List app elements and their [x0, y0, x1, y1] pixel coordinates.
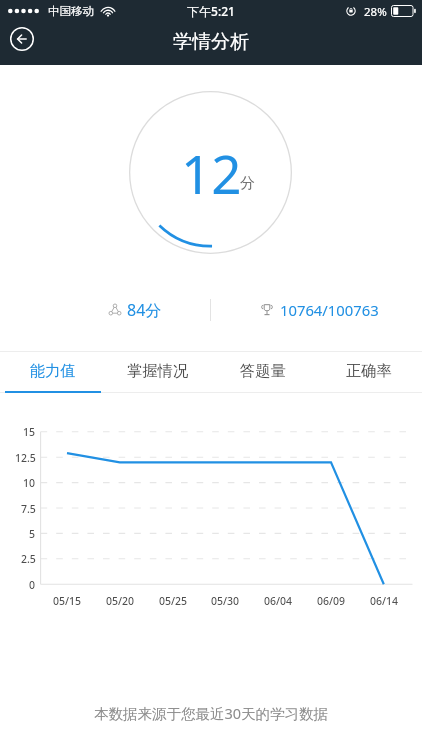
- staticText: 下午5:21: [0, 3, 422, 19]
- staticText: 10: [23, 476, 36, 490]
- staticText: 答题量: [240, 361, 286, 380]
- staticText: 06/14: [370, 594, 399, 608]
- staticText: 能力值: [30, 361, 76, 380]
- button[interactable]: Back: [8, 25, 36, 53]
- staticText: 05/20: [106, 594, 135, 608]
- staticText: 7.5: [21, 502, 36, 516]
- staticText: 06/09: [317, 594, 346, 608]
- staticText: 12: [181, 137, 242, 209]
- button[interactable]: 10764/100763: [244, 290, 394, 330]
- button[interactable]: 84分: [60, 290, 210, 330]
- staticText: 28%: [364, 4, 387, 20]
- staticText: 12.5: [15, 451, 36, 465]
- staticText: 2.5: [21, 552, 36, 566]
- staticText: 06/04: [264, 594, 293, 608]
- staticText: 分: [240, 174, 255, 193]
- button[interactable]: 能力值: [0, 351, 105, 393]
- staticText: 10764/100763: [280, 300, 379, 320]
- staticText: 15: [23, 425, 36, 439]
- staticText: 05/30: [211, 594, 240, 608]
- button[interactable]: 正确率: [316, 351, 422, 393]
- staticText: 正确率: [346, 361, 392, 380]
- staticText: 中国移动: [48, 4, 94, 18]
- button[interactable]: 掌握情况: [105, 351, 210, 393]
- staticText: 本数据来源于您最近30天的学习数据: [0, 703, 422, 723]
- staticText: 5: [29, 527, 36, 541]
- staticText: 05/25: [159, 594, 188, 608]
- staticText: 0: [29, 578, 36, 592]
- button[interactable]: 答题量: [210, 351, 316, 393]
- staticText: 05/15: [53, 594, 82, 608]
- staticText: 84分: [127, 299, 162, 321]
- staticText: 学情分析: [0, 30, 422, 54]
- staticText: 掌握情况: [127, 361, 189, 380]
